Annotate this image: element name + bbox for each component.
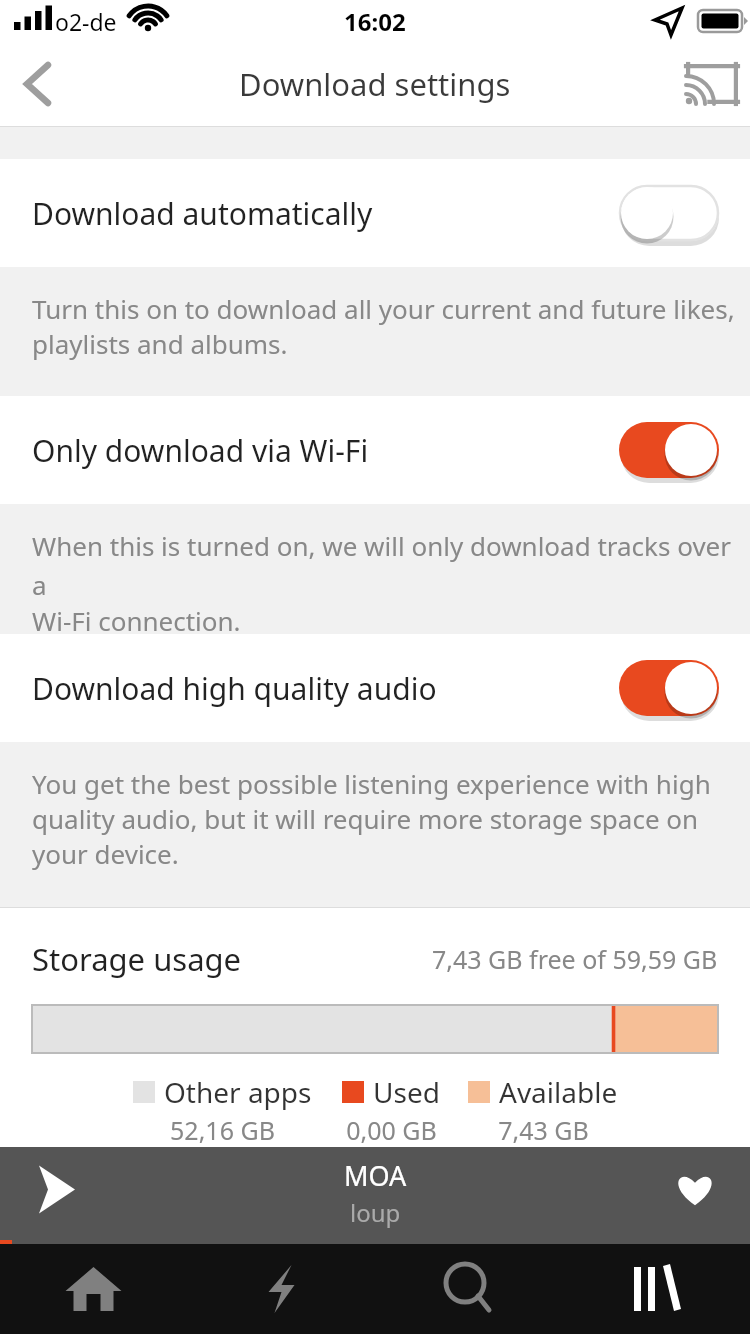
button[interactable]: Only download via Wi-Fi: [0, 396, 750, 504]
button[interactable]: Play: [0, 1147, 110, 1244]
staticText: Wi-Fi connection.: [32, 603, 241, 634]
staticText: Download settings: [239, 63, 511, 105]
button[interactable]: Download automatically: [0, 159, 750, 267]
staticText: 7,43 GB: [498, 1113, 589, 1147]
button[interactable]: Feed: [187, 1244, 374, 1334]
staticText: Only download via Wi-Fi: [32, 430, 369, 471]
staticText: Available: [499, 1073, 618, 1111]
staticText: 7,43 GB free of 59,59 GB: [432, 942, 718, 976]
staticText: Storage usage: [32, 938, 242, 980]
staticText: MOA: [344, 1157, 407, 1194]
staticText: o2-de: [55, 6, 117, 37]
button[interactable]: Only download via Wi-Fi on: [619, 422, 719, 478]
button[interactable]: Library: [562, 1244, 750, 1334]
staticText: When this is turned on, we will only dow…: [32, 528, 750, 603]
button[interactable]: Like: [640, 1147, 750, 1244]
staticText: Download high quality audio: [32, 668, 437, 709]
staticText: your device.: [32, 836, 179, 871]
button[interactable]: Download high quality audio: [0, 634, 750, 742]
button[interactable]: Search: [374, 1244, 562, 1334]
staticText: 52,16 GB: [170, 1113, 275, 1147]
staticText: 16:02: [344, 5, 406, 38]
staticText: playlists and albums.: [32, 326, 288, 361]
staticText: quality audio, but it will require more …: [32, 801, 699, 836]
staticText: loup: [350, 1196, 401, 1229]
button[interactable]: Home: [0, 1244, 187, 1334]
staticText: Other apps: [164, 1073, 312, 1111]
staticText: Turn this on to download all your curren…: [32, 291, 735, 326]
staticText: Download automatically: [32, 193, 373, 234]
staticText: Used: [373, 1073, 440, 1111]
staticText: 0,00 GB: [346, 1113, 437, 1147]
button[interactable]: Download high quality audio on: [619, 660, 719, 716]
staticText: You get the best possible listening expe…: [32, 766, 711, 801]
button[interactable]: Back: [0, 49, 70, 119]
button[interactable]: Cast: [674, 46, 750, 122]
button[interactable]: Download automatically off: [619, 185, 719, 241]
